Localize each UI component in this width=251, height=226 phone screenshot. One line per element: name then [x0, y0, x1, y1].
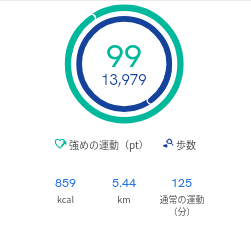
button[interactable]: 125	[153, 174, 211, 217]
staticText: 859	[55, 174, 77, 190]
staticText: 13,979	[101, 70, 147, 90]
staticText: kcal	[57, 193, 74, 206]
staticText: 歩数	[176, 137, 196, 151]
button[interactable]: 歩数	[162, 137, 196, 151]
button[interactable]: 強めの運動	[55, 137, 149, 151]
staticText: 125	[171, 174, 193, 190]
staticText: km	[117, 193, 131, 206]
button[interactable]: 859	[36, 174, 95, 206]
button[interactable]: 5.44	[95, 174, 153, 206]
staticText: 通常の運動 （分）	[159, 193, 205, 217]
staticText: 5.44	[112, 174, 137, 190]
staticText: 強めの運動（pt）	[69, 137, 149, 151]
staticText: 99	[106, 35, 142, 77]
